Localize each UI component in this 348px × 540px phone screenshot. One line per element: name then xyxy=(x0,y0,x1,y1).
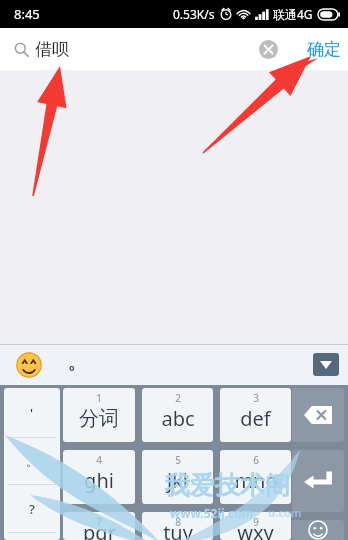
button[interactable]: Search xyxy=(10,38,32,60)
button[interactable]: 9 xyxy=(220,512,291,540)
button[interactable]: 8 xyxy=(142,512,213,540)
button[interactable]: 确定 xyxy=(300,28,348,70)
button[interactable]: 1 xyxy=(63,388,135,442)
button[interactable]: Enter xyxy=(292,450,344,512)
staticText: 6 xyxy=(253,453,259,467)
button[interactable]: 4 xyxy=(63,450,135,504)
staticText: 0.53K/s xyxy=(173,6,215,22)
staticText: www.52ij.com xyxy=(170,505,254,521)
staticText: 联通4G xyxy=(273,6,313,22)
staticText: 2 xyxy=(175,391,181,405)
staticText: 借呗 xyxy=(35,39,69,60)
staticText: ? xyxy=(29,500,35,518)
staticText: def xyxy=(240,405,271,432)
staticText: jkl xyxy=(167,467,188,494)
staticText: 8:45 xyxy=(14,5,40,23)
button[interactable]: 。 xyxy=(4,438,60,484)
staticText: tuv xyxy=(163,519,193,540)
staticText: 。 xyxy=(26,453,39,469)
staticText: 5 xyxy=(175,453,181,467)
staticText: abc xyxy=(161,405,195,432)
staticText: 4 xyxy=(96,453,102,467)
staticText: pqr xyxy=(83,519,116,540)
staticText: 1 xyxy=(96,391,102,405)
button[interactable]: Emoji panel xyxy=(292,520,344,540)
button[interactable]: ? xyxy=(4,485,60,532)
staticText: o xyxy=(69,361,75,373)
staticText: ghi xyxy=(84,467,114,494)
button[interactable]: Backspace xyxy=(292,388,344,442)
button[interactable] xyxy=(4,533,60,540)
button[interactable]: 7 xyxy=(63,512,135,540)
staticText: u.com xyxy=(268,505,302,520)
button[interactable]: 2 xyxy=(142,388,213,442)
staticText: wxy xyxy=(237,519,274,540)
staticText: 我爱技术阁 xyxy=(165,470,290,501)
staticText: 8 xyxy=(175,515,181,529)
button[interactable]: Hide keyboard xyxy=(313,353,339,376)
button[interactable]: 3 xyxy=(220,388,291,442)
staticText: 确定 xyxy=(307,39,341,60)
staticText: ' xyxy=(30,404,34,422)
staticText: 9 xyxy=(253,515,259,529)
button[interactable]: 6 xyxy=(220,450,291,504)
button[interactable]: Clear text xyxy=(255,36,281,62)
staticText: 分词 xyxy=(79,406,119,431)
button[interactable]: 5 xyxy=(142,450,213,504)
staticText: 7 xyxy=(96,515,102,529)
button[interactable]: ' xyxy=(4,388,60,437)
button[interactable]: Emoji xyxy=(14,350,44,380)
staticText: mno xyxy=(234,467,278,494)
staticText: 3 xyxy=(253,391,259,405)
